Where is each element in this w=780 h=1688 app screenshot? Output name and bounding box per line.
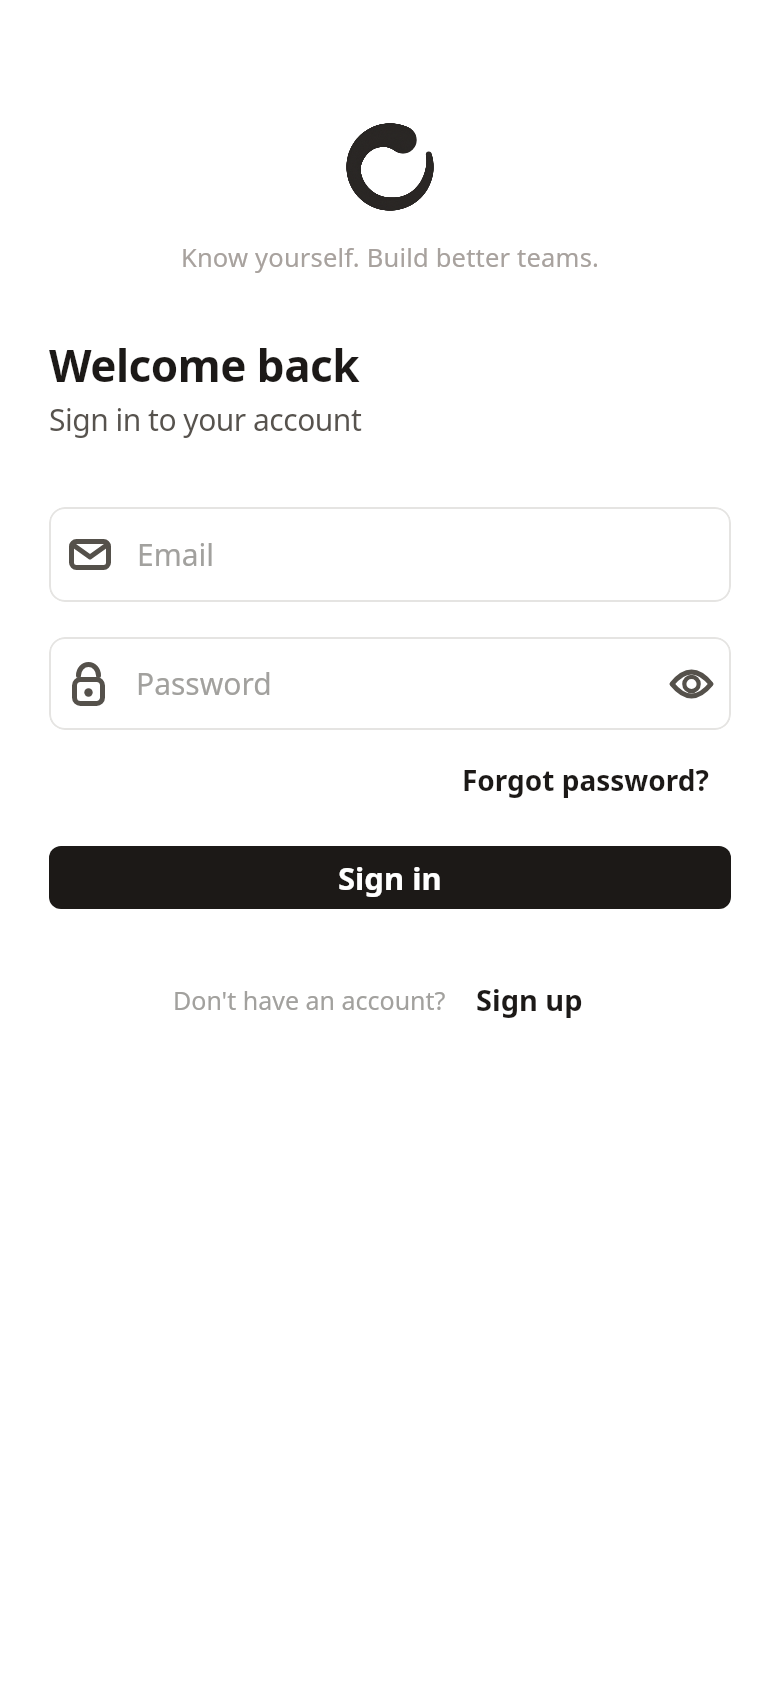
button[interactable]: Sign up xyxy=(476,980,583,1019)
button[interactable]: Password xyxy=(49,637,731,730)
staticText: Welcome back xyxy=(49,335,360,395)
staticText: Know yourself. Build better teams. xyxy=(0,240,780,275)
button[interactable]: Sign in xyxy=(49,846,731,909)
staticText: Email xyxy=(137,534,215,575)
staticText: Password xyxy=(136,663,670,704)
button[interactable]: Forgot password? xyxy=(462,761,709,799)
staticText: Sign in to your account xyxy=(49,399,362,440)
staticText: Sign in xyxy=(338,857,442,899)
staticText: Don't have an account? xyxy=(173,983,446,1017)
button[interactable]: Email xyxy=(49,507,731,602)
